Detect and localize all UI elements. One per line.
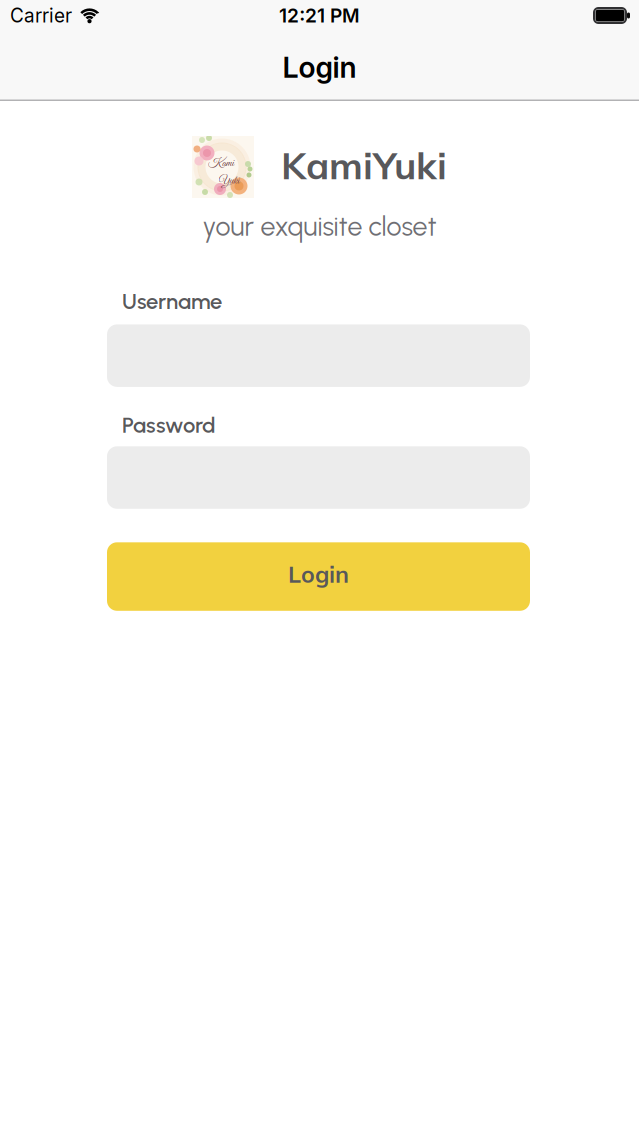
staticText: Username xyxy=(122,288,222,314)
staticText: KamiYuki xyxy=(281,141,447,189)
staticText: Yuki xyxy=(218,174,239,188)
staticText: Password xyxy=(122,412,215,438)
button[interactable]: Login xyxy=(107,542,530,611)
staticText: Login xyxy=(288,559,349,589)
staticText: Kami xyxy=(208,156,234,171)
staticText: your exquisite closet xyxy=(202,210,436,242)
staticText: Login xyxy=(282,50,356,85)
staticText: 12:21 PM xyxy=(279,4,360,27)
staticText: Carrier xyxy=(10,4,72,27)
